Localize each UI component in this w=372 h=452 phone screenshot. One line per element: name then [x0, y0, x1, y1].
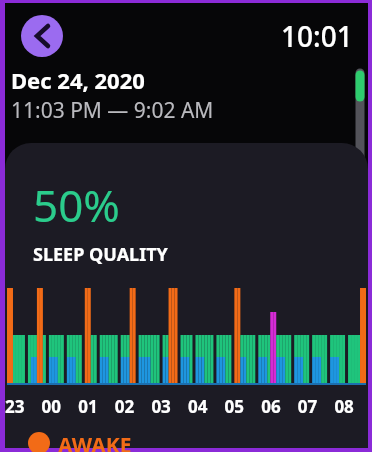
- button[interactable]: Back: [21, 15, 63, 57]
